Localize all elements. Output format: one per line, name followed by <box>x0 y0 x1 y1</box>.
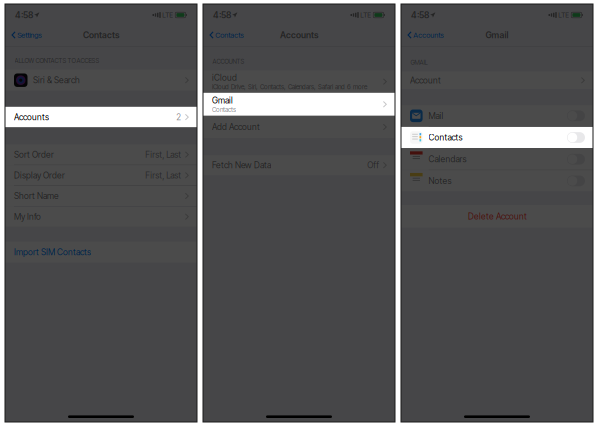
staticText: iCloud <box>212 72 237 83</box>
button[interactable]: Accounts <box>5 107 197 127</box>
staticText: LTE <box>162 11 173 19</box>
staticText: Accounts <box>280 30 318 40</box>
staticText: 2 <box>176 112 181 122</box>
staticText: Off <box>367 160 379 170</box>
staticText: Sort Order <box>14 149 54 160</box>
button[interactable]: Accounts <box>401 24 450 46</box>
button[interactable]: Account <box>401 71 593 89</box>
staticText: Display Order <box>14 170 65 180</box>
button[interactable]: iCloud <box>203 70 395 93</box>
staticText: GMAIL <box>410 59 427 66</box>
staticText: 4:58 <box>15 10 33 20</box>
staticText: LTE <box>360 11 371 19</box>
staticText: LTE <box>558 11 569 19</box>
staticText: 4:58 <box>213 10 231 20</box>
button[interactable]: Mail <box>401 105 593 126</box>
button[interactable]: Delete Account <box>401 205 593 227</box>
staticText: Calendars <box>429 154 467 164</box>
staticText: My Info <box>14 211 41 222</box>
button[interactable]: Sort Order <box>5 144 197 165</box>
button[interactable]: Settings <box>5 24 48 46</box>
staticText: Contacts <box>83 30 119 40</box>
button[interactable]: My Info <box>5 207 197 227</box>
button[interactable]: Fetch New Data <box>203 155 395 175</box>
staticText: Fetch New Data <box>212 160 271 170</box>
staticText: Account <box>410 75 441 85</box>
button[interactable]: Contacts <box>203 24 250 46</box>
button[interactable]: Import SIM Contacts <box>5 242 197 263</box>
staticText: First, Last <box>145 170 181 180</box>
staticText: Delete Account <box>468 211 527 221</box>
button[interactable]: Notes <box>401 170 593 191</box>
staticText: Contacts <box>212 106 236 113</box>
staticText: Notes <box>429 176 452 186</box>
button[interactable]: Gmail <box>203 93 395 116</box>
button[interactable]: Calendars <box>401 149 593 170</box>
staticText: Contacts <box>215 30 244 39</box>
button[interactable]: Display Order <box>5 165 197 185</box>
staticText: Settings <box>17 30 42 39</box>
staticText: ALLOW CONTACTS TO ACCESS <box>14 57 99 64</box>
staticText: 4:58 <box>411 10 429 20</box>
button[interactable]: Contacts <box>401 127 593 148</box>
staticText: Gmail <box>485 30 508 40</box>
button[interactable]: Add Account <box>203 116 395 138</box>
staticText: Contacts <box>429 132 463 143</box>
staticText: Siri & Search <box>33 75 80 85</box>
staticText: Accounts <box>413 30 444 39</box>
staticText: First, Last <box>145 149 181 160</box>
staticText: Mail <box>429 111 444 121</box>
button[interactable]: Short Name <box>5 186 197 206</box>
staticText: iCloud Drive, Siri, Contacts, Calendars,… <box>212 83 367 91</box>
staticText: Add Account <box>212 122 260 132</box>
button[interactable]: Siri & Search <box>5 70 197 91</box>
staticText: Import SIM Contacts <box>14 247 91 257</box>
staticText: Accounts <box>14 112 49 122</box>
staticText: Gmail <box>212 95 233 105</box>
staticText: Short Name <box>14 191 59 201</box>
staticText: ACCOUNTS <box>212 58 244 65</box>
